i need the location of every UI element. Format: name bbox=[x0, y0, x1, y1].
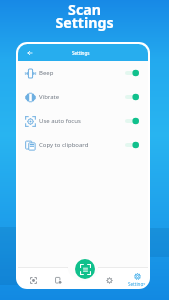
staticText: Beep bbox=[39, 69, 54, 77]
button[interactable]: Create bbox=[101, 267, 118, 287]
button[interactable]: Use auto focus bbox=[18, 109, 148, 133]
staticText: Settings bbox=[128, 281, 146, 287]
button[interactable]: Beep bbox=[18, 61, 148, 85]
staticText: Vibrate bbox=[39, 93, 60, 101]
button[interactable]: Scan bbox=[25, 267, 42, 287]
staticText: Copy to clipboard bbox=[39, 141, 89, 149]
button[interactable]: History bbox=[50, 267, 67, 287]
staticText: Scan Settings bbox=[0, 0, 169, 32]
button[interactable]: Back bbox=[25, 48, 34, 57]
button[interactable]: Copy to clipboard bbox=[18, 133, 148, 157]
staticText: Settings bbox=[72, 50, 90, 56]
button[interactable]: Scan bbox=[75, 259, 95, 279]
staticText: Use auto focus bbox=[39, 117, 81, 125]
button[interactable]: Vibrate bbox=[18, 85, 148, 109]
button[interactable]: Settings bbox=[126, 270, 148, 287]
